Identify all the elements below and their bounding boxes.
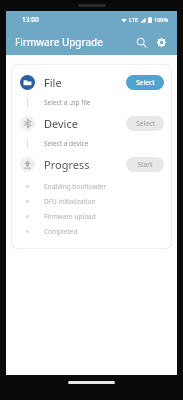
staticText: Select [136, 78, 155, 87]
staticText: Select a device [44, 139, 89, 148]
staticText: File [44, 75, 62, 90]
button[interactable]: Select [126, 116, 164, 131]
staticText: Progress [44, 157, 90, 172]
staticText: Enabling bootloader [44, 182, 107, 191]
staticText: Select [136, 119, 155, 128]
staticText: 100% [154, 16, 169, 23]
staticText: Firmware Upgrade [15, 35, 103, 49]
button[interactable]: Device [11, 111, 172, 135]
staticText: Start [137, 160, 153, 169]
button[interactable]: Select [126, 75, 164, 90]
staticText: LTE [129, 16, 138, 23]
staticText: 13:00 [22, 15, 39, 24]
staticText: Completed [44, 227, 78, 236]
staticText: Select a .zip file [44, 98, 91, 107]
button[interactable]: Settings [151, 32, 171, 52]
staticText: Firmware upload [44, 212, 96, 221]
button[interactable]: File [11, 70, 172, 94]
staticText: Device [44, 116, 78, 131]
staticText: DFU initialization [44, 197, 96, 206]
button[interactable]: Search [131, 32, 151, 52]
button[interactable]: Start [126, 157, 164, 172]
button[interactable]: Progress [11, 152, 172, 176]
